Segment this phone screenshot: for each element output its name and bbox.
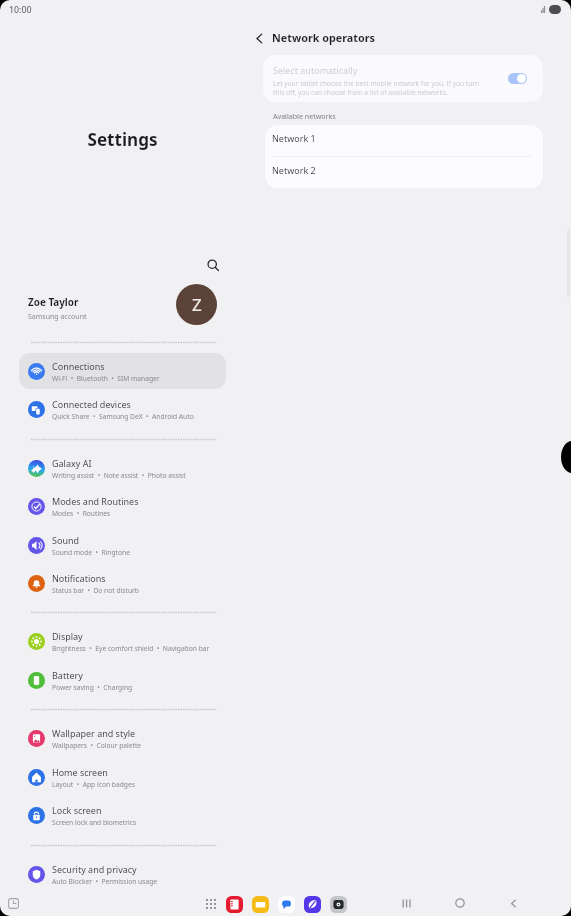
staticText: Settings xyxy=(0,128,245,151)
staticText: Let your tablet choose the best mobile n… xyxy=(273,79,492,97)
button[interactable]: Network 2 xyxy=(265,157,543,188)
button[interactable]: App xyxy=(330,896,347,913)
button[interactable]: Search xyxy=(202,254,224,276)
button[interactable]: App xyxy=(278,896,295,913)
button[interactable]: Connections xyxy=(19,353,226,389)
staticText: Select automatically xyxy=(273,64,358,76)
staticText: Writing assist • Note assist • Photo ass… xyxy=(52,471,186,480)
staticText: Home screen xyxy=(52,766,108,778)
staticText: Connections xyxy=(52,360,105,372)
staticText: Wi-Fi • Bluetooth • SIM manager xyxy=(52,374,160,383)
button[interactable]: Modes and Routines xyxy=(19,488,226,524)
button[interactable]: Galaxy AI xyxy=(19,450,226,486)
button[interactable]: Sound xyxy=(19,527,226,563)
button[interactable]: Home xyxy=(450,893,470,913)
staticText: Power saving • Charging xyxy=(52,683,133,692)
button[interactable]: Recents xyxy=(396,893,416,913)
staticText: Network 2 xyxy=(272,164,316,176)
staticText: Security and privacy xyxy=(52,863,137,875)
button[interactable]: Lock screen xyxy=(19,797,226,833)
staticText: Galaxy AI xyxy=(52,457,92,469)
staticText: Brightness • Eye comfort shield • Naviga… xyxy=(52,644,210,653)
staticText: Display xyxy=(52,630,83,642)
button[interactable]: Home screen xyxy=(19,759,226,795)
staticText: Modes and Routines xyxy=(52,495,139,507)
staticText: Sound xyxy=(52,534,80,546)
button[interactable]: Select automatically toggle xyxy=(508,73,527,84)
staticText: Wallpapers • Colour palette xyxy=(52,741,142,750)
button[interactable]: Back xyxy=(249,28,269,48)
staticText: Connected devices xyxy=(52,398,131,410)
staticText: Samsung account xyxy=(28,312,87,322)
button[interactable]: App xyxy=(304,896,321,913)
button[interactable]: Edge panel xyxy=(561,441,571,473)
staticText: Battery xyxy=(52,669,83,681)
button[interactable]: Battery xyxy=(19,662,226,698)
button[interactable]: Back xyxy=(503,893,523,913)
staticText: Notifications xyxy=(52,572,106,584)
staticText: Z xyxy=(192,293,202,316)
staticText: 10:00 xyxy=(9,4,32,16)
button[interactable]: Wallpaper and style xyxy=(19,720,226,756)
staticText: Screen lock and biometrics xyxy=(52,818,137,827)
staticText: Lock screen xyxy=(52,804,102,816)
button[interactable]: App drawer xyxy=(202,895,220,913)
staticText: Modes • Routines xyxy=(52,509,111,518)
button[interactable]: Notifications xyxy=(19,565,226,601)
staticText: Zoe Taylor xyxy=(28,295,79,308)
staticText: Wallpaper and style xyxy=(52,727,136,739)
staticText: Quick Share • Samsung DeX • Android Auto xyxy=(52,412,194,421)
staticText: Auto Blocker • Permission usage xyxy=(52,877,158,886)
button[interactable]: Network 1 xyxy=(265,125,543,156)
staticText: Network operators xyxy=(272,30,376,45)
staticText: Network 1 xyxy=(272,132,316,144)
button[interactable]: Display xyxy=(19,623,226,659)
button[interactable]: Select automatically xyxy=(263,55,543,102)
button[interactable]: App xyxy=(226,896,243,913)
staticText: Available networks xyxy=(273,111,336,121)
button[interactable]: Recent apps xyxy=(5,895,21,911)
staticText: Status bar • Do not disturb xyxy=(52,586,139,595)
staticText: Sound mode • Ringtone xyxy=(52,548,130,557)
staticText: Layout • App icon badges xyxy=(52,780,135,789)
button[interactable]: Zoe Taylor xyxy=(0,283,245,326)
button[interactable]: Security and privacy xyxy=(19,856,226,892)
button[interactable]: Connected devices xyxy=(19,391,226,427)
button[interactable]: App xyxy=(252,896,269,913)
